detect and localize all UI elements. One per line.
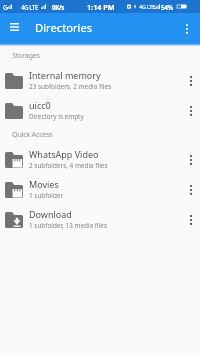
staticText: 4G LTE: [21, 3, 38, 11]
staticText: 4G LTE: [139, 3, 156, 11]
button[interactable]: More options: [181, 96, 200, 126]
staticText: 1 subfolder: [29, 191, 64, 200]
staticText: uicc0: [29, 99, 51, 111]
staticText: Movies: [29, 178, 59, 190]
button[interactable]: More options: [181, 145, 200, 175]
staticText: 1 subfolder, 13 media files: [29, 221, 108, 230]
button[interactable]: More options: [179, 17, 195, 40]
staticText: G: [3, 3, 8, 11]
staticText: 2 subfolders, 4 media files: [29, 161, 108, 170]
staticText: Directory is empty: [29, 112, 84, 121]
staticText: 1:14 PM: [87, 2, 115, 12]
staticText: Internal memory: [29, 69, 101, 81]
staticText: 0K/s: [52, 3, 65, 11]
staticText: WhatsApp Video: [29, 148, 99, 160]
staticText: Directories: [35, 20, 93, 35]
staticText: Storages: [12, 50, 40, 60]
button[interactable]: WhatsApp Video: [0, 145, 200, 175]
button[interactable]: More options: [181, 66, 200, 96]
staticText: 23 subfolders, 2 media files: [29, 82, 112, 91]
staticText: Quick Access: [12, 129, 53, 139]
button[interactable]: Internal memory: [0, 66, 200, 96]
staticText: 54%: [161, 3, 173, 11]
button[interactable]: Navigation menu: [5, 17, 24, 37]
button[interactable]: uicc0: [0, 96, 200, 126]
button[interactable]: Download: [0, 205, 200, 235]
button[interactable]: More options: [181, 175, 200, 205]
button[interactable]: More options: [181, 205, 200, 235]
button[interactable]: Movies: [0, 175, 200, 205]
staticText: Download: [29, 208, 72, 220]
